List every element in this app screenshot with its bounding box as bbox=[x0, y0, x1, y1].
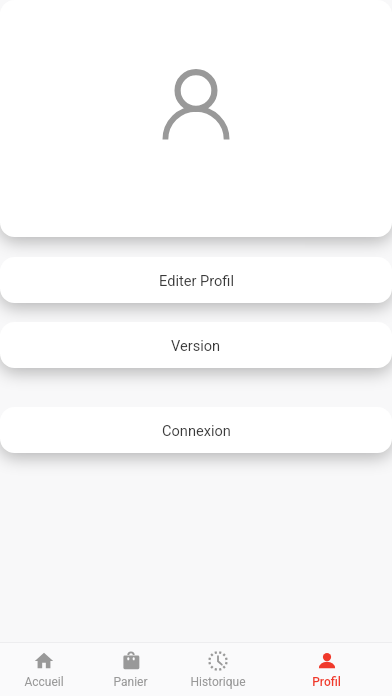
staticText: Version bbox=[171, 337, 221, 354]
button[interactable]: Panier bbox=[87, 643, 174, 696]
staticText: Panier bbox=[113, 675, 148, 689]
button[interactable]: Accueil bbox=[0, 643, 87, 696]
button[interactable]: Historique bbox=[174, 643, 261, 696]
button[interactable]: Version bbox=[0, 322, 392, 368]
button[interactable]: Connexion bbox=[0, 407, 392, 453]
button[interactable]: Profil bbox=[261, 643, 392, 696]
staticText: Accueil bbox=[24, 675, 64, 689]
staticText: Profil bbox=[312, 675, 341, 689]
staticText: Historique bbox=[190, 675, 246, 689]
button[interactable]: Editer Profil bbox=[0, 257, 392, 303]
staticText: Connexion bbox=[162, 422, 231, 439]
staticText: Editer Profil bbox=[159, 272, 234, 289]
